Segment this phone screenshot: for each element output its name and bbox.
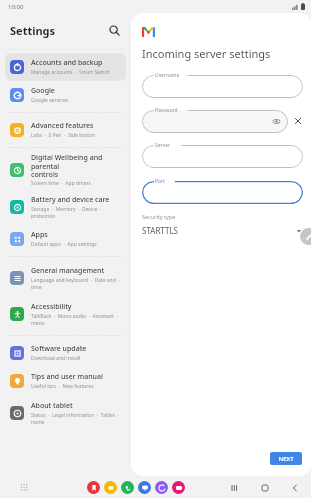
staticText: Storage · Memory · Device · protection xyxy=(31,206,122,219)
button[interactable]: Home xyxy=(258,481,271,494)
staticText: Incoming server settings xyxy=(142,46,271,61)
button[interactable]: Google xyxy=(5,81,126,109)
staticText: Password xyxy=(155,107,178,114)
button[interactable]: Back xyxy=(288,481,301,494)
staticText: TalkBack · Mono audio · Assistant · menu xyxy=(31,313,122,326)
button[interactable]: Search xyxy=(105,21,123,39)
staticText: Accessibility xyxy=(31,302,72,312)
staticText: Screen time · App timers xyxy=(31,180,91,187)
staticText: Useful tips · New features xyxy=(31,383,94,390)
button[interactable]: App 2 xyxy=(121,481,134,494)
button[interactable]: NEXT xyxy=(270,452,302,465)
button[interactable]: Tips and user manual xyxy=(5,367,126,395)
button[interactable]: Digital Wellbeing and parental controls xyxy=(5,151,126,189)
button[interactable]: Accessibility xyxy=(5,296,126,332)
staticText: 10:00 xyxy=(8,3,24,11)
button[interactable]: App 3 xyxy=(138,481,151,494)
button[interactable]: Advanced features xyxy=(5,116,126,144)
button[interactable]: Edit xyxy=(300,228,311,245)
staticText: Language and keyboard · Date and · time xyxy=(31,277,122,290)
button[interactable]: App 0 xyxy=(87,481,100,494)
staticText: STARTTLS xyxy=(142,225,179,236)
button[interactable]: Show password xyxy=(272,117,281,126)
staticText: Tips and user manual xyxy=(31,372,103,382)
button[interactable]: Apps xyxy=(5,225,126,253)
staticText: Username xyxy=(155,72,180,79)
button[interactable]: Clear xyxy=(293,115,303,126)
button[interactable]: App 5 xyxy=(172,481,185,494)
button[interactable] xyxy=(142,75,303,98)
staticText: Google services xyxy=(31,97,68,104)
staticText: NEXT xyxy=(278,455,294,463)
staticText: Apps xyxy=(31,230,48,240)
staticText: Google xyxy=(31,86,55,96)
staticText: Manage accounts · Smart Switch xyxy=(31,69,110,76)
button[interactable]: STARTTLS xyxy=(142,224,303,237)
staticText: General management xyxy=(31,266,105,276)
staticText: Default apps · App settings xyxy=(31,241,97,248)
staticText: Accounts and backup xyxy=(31,58,103,68)
button[interactable]: App 1 xyxy=(104,481,117,494)
button[interactable] xyxy=(142,181,303,204)
staticText: Server xyxy=(155,142,171,149)
staticText: Advanced features xyxy=(31,121,94,131)
staticText: Status · Legal information · Tablet · na… xyxy=(31,412,122,425)
button[interactable]: All apps xyxy=(17,480,31,494)
button[interactable]: Software update xyxy=(5,339,126,367)
button[interactable]: Battery and device care xyxy=(5,189,126,225)
button[interactable]: Recents xyxy=(228,481,241,494)
button[interactable]: App 4 xyxy=(155,481,168,494)
button[interactable]: Show password xyxy=(142,110,288,133)
staticText: Security type xyxy=(142,213,176,220)
staticText: Settings xyxy=(10,23,56,38)
button[interactable]: Accounts and backup xyxy=(5,53,126,81)
button[interactable] xyxy=(142,145,303,168)
staticText: Digital Wellbeing and parental controls xyxy=(31,153,122,179)
staticText: Software update xyxy=(31,344,87,354)
button[interactable]: General management xyxy=(5,260,126,296)
staticText: Labs · S Pen · Side button xyxy=(31,132,96,139)
staticText: Port xyxy=(155,178,165,185)
button[interactable]: About tablet xyxy=(5,395,126,431)
staticText: Download and install xyxy=(31,355,81,362)
staticText: Battery and device care xyxy=(31,195,110,205)
staticText: About tablet xyxy=(31,401,73,411)
